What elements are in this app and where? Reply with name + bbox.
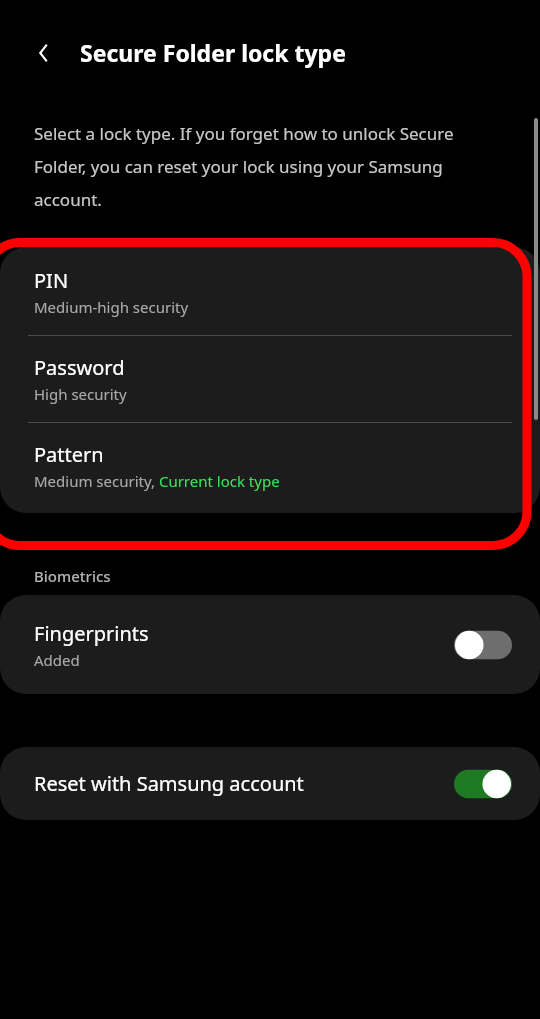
button[interactable]: Pattern	[0, 423, 540, 513]
staticText: Fingerprints	[34, 620, 149, 647]
button[interactable]: Back	[22, 31, 66, 75]
staticText: High security	[34, 384, 127, 404]
button[interactable]: Reset with Samsung account	[0, 747, 540, 820]
staticText: Reset with Samsung account	[34, 770, 454, 797]
button[interactable]: On	[454, 767, 512, 801]
button[interactable]: Fingerprints	[0, 595, 540, 694]
staticText: Select a lock type. If you forget how to…	[34, 122, 500, 211]
button[interactable]: PIN	[0, 247, 540, 335]
staticText: Medium security, Current lock type	[34, 471, 280, 491]
staticText: Password	[34, 354, 125, 381]
button[interactable]: Off	[454, 628, 512, 662]
staticText: Medium-high security	[34, 297, 189, 317]
button[interactable]: Password	[0, 336, 540, 422]
staticText: Biometrics	[34, 566, 111, 586]
staticText: Secure Folder lock type	[80, 37, 346, 68]
staticText: Added	[34, 650, 80, 670]
staticText: Pattern	[34, 441, 104, 468]
staticText: PIN	[34, 267, 69, 294]
